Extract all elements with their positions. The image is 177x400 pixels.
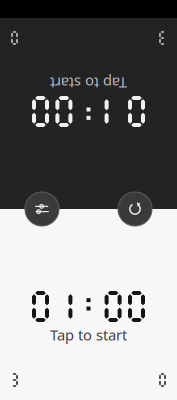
button[interactable]: Tap to start xyxy=(0,18,177,209)
staticText: Tap to start xyxy=(50,325,127,344)
button[interactable]: Tap to start xyxy=(0,209,177,400)
button[interactable]: Reset xyxy=(118,192,152,226)
button[interactable]: Settings xyxy=(25,192,59,226)
